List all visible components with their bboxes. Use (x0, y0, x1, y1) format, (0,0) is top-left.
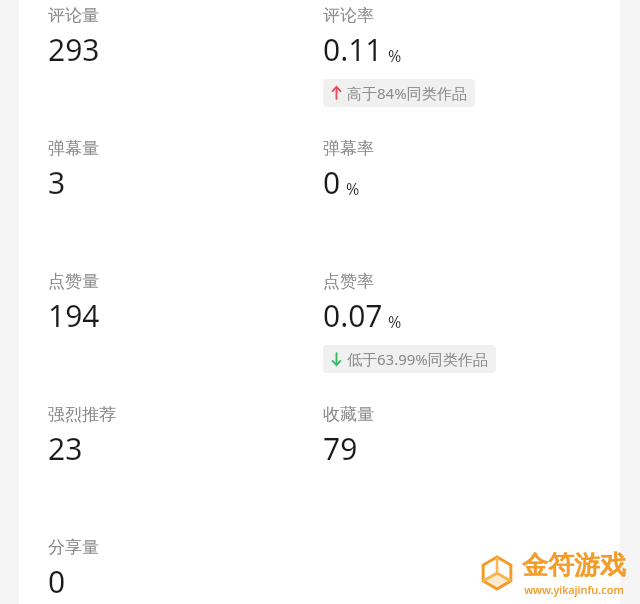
staticText: 低于63.99%同类作品 (347, 349, 488, 369)
staticText: % (346, 178, 360, 200)
staticText: 点赞量 (48, 271, 99, 292)
staticText: 79 (323, 428, 358, 469)
staticText: % (388, 311, 402, 333)
other: Lower than peers (331, 352, 342, 366)
staticText: 3 (48, 162, 66, 203)
button[interactable]: 评论率 (320, 0, 640, 133)
staticText: 弹幕率 (323, 138, 374, 159)
staticText: 0 (48, 561, 66, 602)
button[interactable]: 强烈推荐 (0, 399, 320, 532)
button[interactable]: 点赞率 (320, 266, 640, 399)
staticText: www.yikajinfu.com (524, 582, 624, 597)
button[interactable]: 点赞量 (0, 266, 320, 399)
button[interactable]: 评论量 (0, 0, 320, 133)
staticText: 0.07 (323, 295, 383, 336)
button[interactable]: Lower than peers (323, 345, 496, 373)
staticText: 0.11 (323, 29, 383, 70)
button[interactable]: 收藏量 (320, 399, 640, 532)
staticText: 金符游戏 (522, 549, 626, 582)
staticText: 点赞率 (323, 271, 374, 292)
staticText: 强烈推荐 (48, 404, 116, 425)
button[interactable]: Higher than peers (323, 79, 475, 107)
button[interactable]: 弹幕量 (0, 133, 320, 266)
other: Logo (477, 553, 517, 593)
button[interactable]: 分享量 (0, 532, 320, 604)
staticText: 分享量 (48, 537, 99, 558)
button[interactable] (320, 532, 640, 604)
staticText: 23 (48, 428, 83, 469)
staticText: 高于84%同类作品 (347, 83, 467, 103)
staticText: 评论率 (323, 5, 374, 26)
other: Higher than peers (331, 86, 342, 100)
staticText: % (388, 45, 402, 67)
button[interactable]: 弹幕率 (320, 133, 640, 266)
staticText: 弹幕量 (48, 138, 99, 159)
staticText: 收藏量 (323, 404, 374, 425)
staticText: 评论量 (48, 5, 99, 26)
staticText: 293 (48, 29, 100, 70)
staticText: 194 (48, 295, 100, 336)
staticText: 0 (323, 162, 341, 203)
